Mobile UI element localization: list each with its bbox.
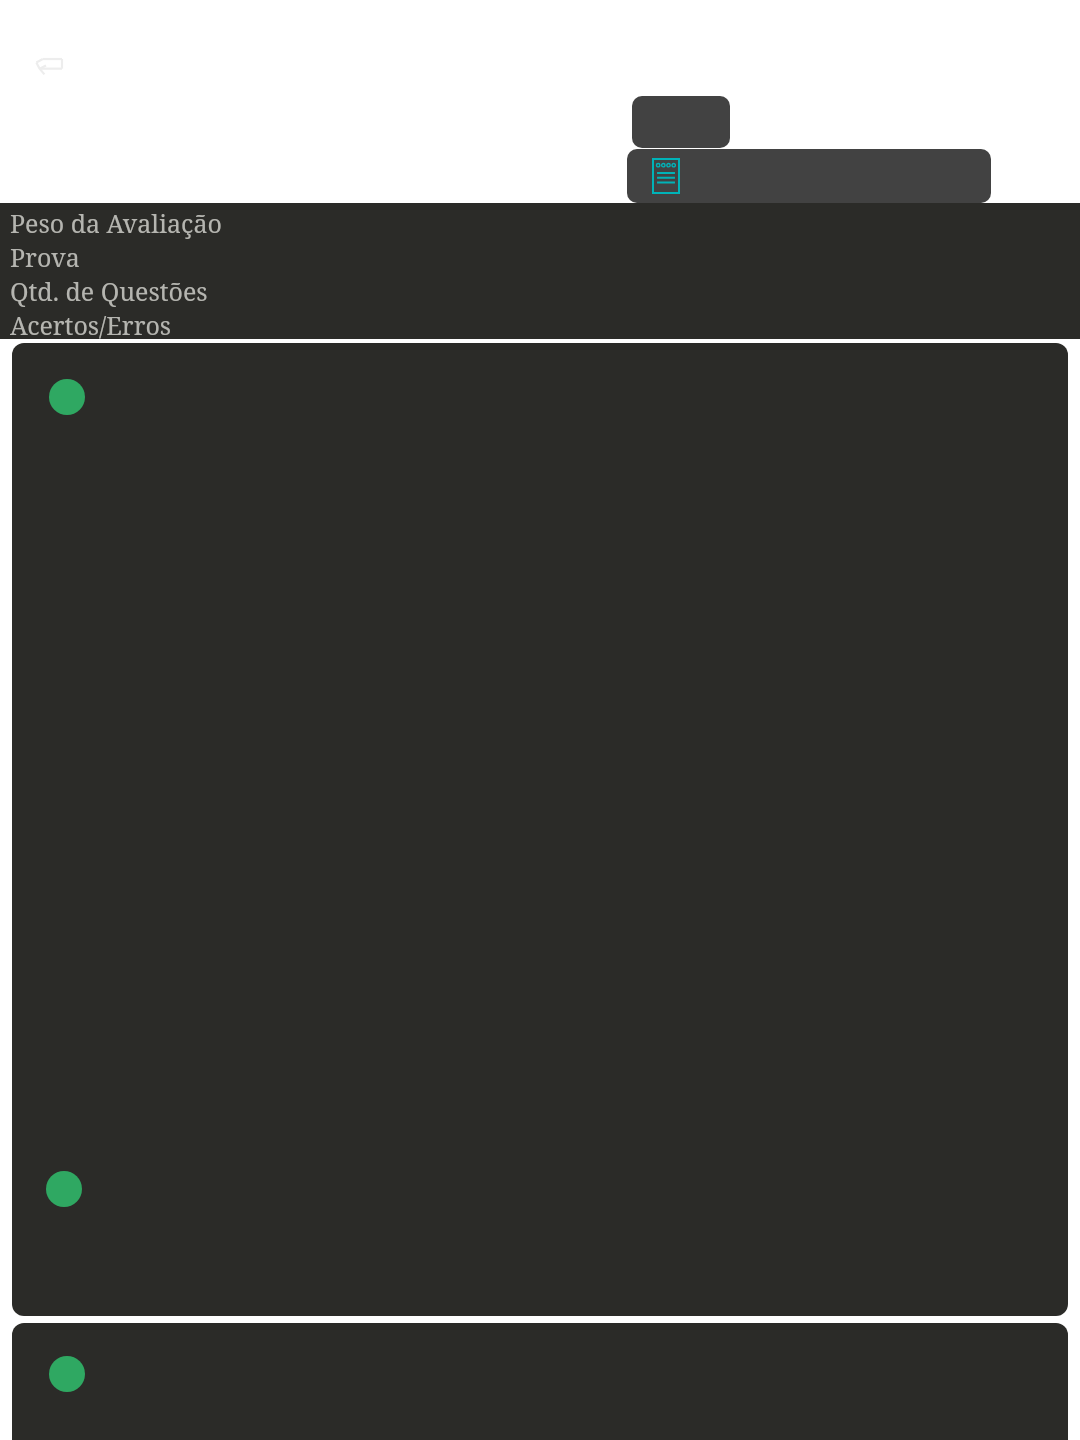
button[interactable] bbox=[12, 1323, 1068, 1440]
staticText: Acertos/Erros bbox=[10, 308, 172, 342]
button[interactable]: Notes bbox=[627, 149, 991, 203]
other: Notes bbox=[652, 158, 680, 194]
button[interactable]: Tab bbox=[632, 96, 730, 148]
button[interactable] bbox=[12, 343, 1068, 1316]
staticText: Qtd. de Questões bbox=[10, 274, 208, 308]
staticText: Prova bbox=[10, 240, 80, 274]
staticText: Peso da Avaliação bbox=[10, 206, 222, 240]
button[interactable]: Back bbox=[30, 52, 70, 84]
